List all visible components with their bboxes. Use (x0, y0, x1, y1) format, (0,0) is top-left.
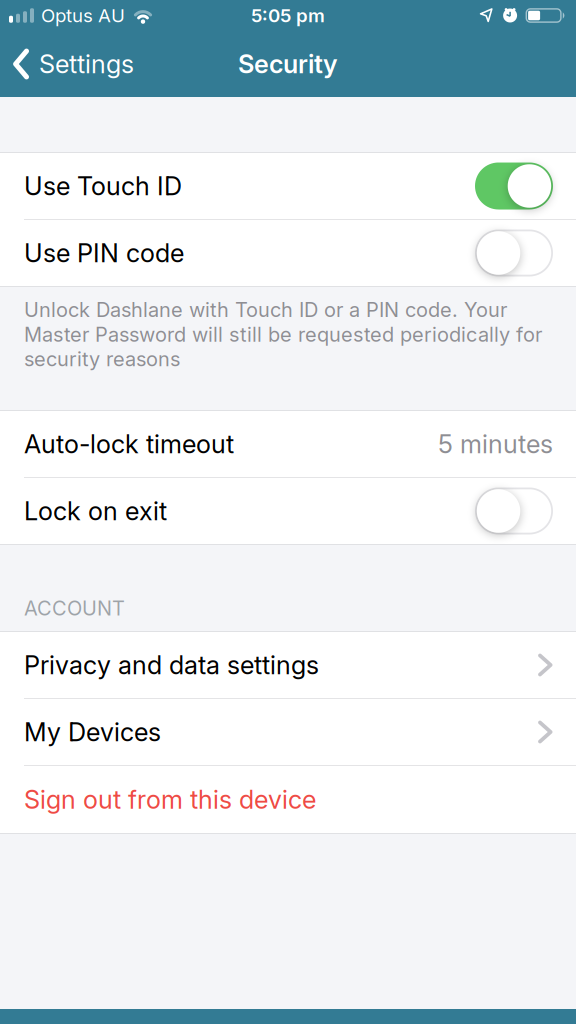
staticText: security reasons (24, 347, 180, 371)
staticText: Sign out from this device (24, 785, 316, 814)
button[interactable]: My Devices (0, 699, 576, 765)
staticText: Optus AU (41, 4, 125, 26)
button[interactable]: Lock on exit (475, 487, 553, 534)
staticText: ACCOUNT (24, 596, 125, 620)
staticText: Use PIN code (24, 238, 184, 268)
button[interactable]: Sign out from this device (0, 766, 576, 833)
staticText: 5 minutes (438, 429, 553, 459)
button[interactable]: Use PIN code (475, 229, 553, 276)
staticText: Settings (39, 49, 134, 79)
staticText: Master Password will still be requested … (24, 323, 542, 346)
button[interactable]: Privacy and data settings (0, 632, 576, 698)
staticText: Security (238, 49, 338, 79)
button[interactable]: Back (0, 40, 134, 87)
staticText: 5:05 pm (251, 4, 325, 26)
staticText: Lock on exit (24, 496, 167, 526)
staticText: My Devices (24, 717, 161, 747)
staticText: Privacy and data settings (24, 650, 319, 680)
staticText: Use Touch ID (24, 171, 182, 201)
staticText: Unlock Dashlane with Touch ID or a PIN c… (24, 298, 507, 322)
button[interactable]: Use Touch ID (475, 162, 553, 209)
staticText: Auto-lock timeout (24, 429, 234, 459)
button[interactable]: Auto-lock timeout (0, 411, 576, 477)
